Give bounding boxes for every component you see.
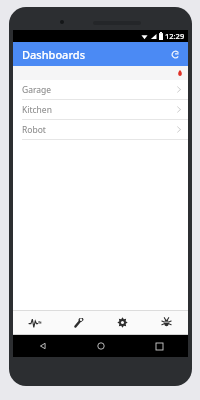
button[interactable]: Kitchen (13, 100, 188, 120)
button[interactable]: Recents (130, 335, 188, 357)
staticText: Dashboards (22, 47, 86, 62)
button[interactable]: Back (13, 335, 72, 357)
button[interactable]: Activity (13, 311, 56, 334)
staticText: Garage (22, 84, 52, 96)
button[interactable]: Tools (56, 311, 100, 334)
button[interactable]: Home (72, 335, 130, 357)
staticText: 12:29 (165, 31, 185, 41)
button[interactable]: Debug (144, 311, 188, 334)
button[interactable]: Garage (13, 80, 188, 100)
button[interactable]: Refresh (167, 46, 183, 62)
button[interactable]: Settings (100, 311, 144, 334)
staticText: Kitchen (22, 104, 52, 116)
button[interactable]: Robot (13, 120, 188, 140)
staticText: Robot (22, 124, 46, 136)
